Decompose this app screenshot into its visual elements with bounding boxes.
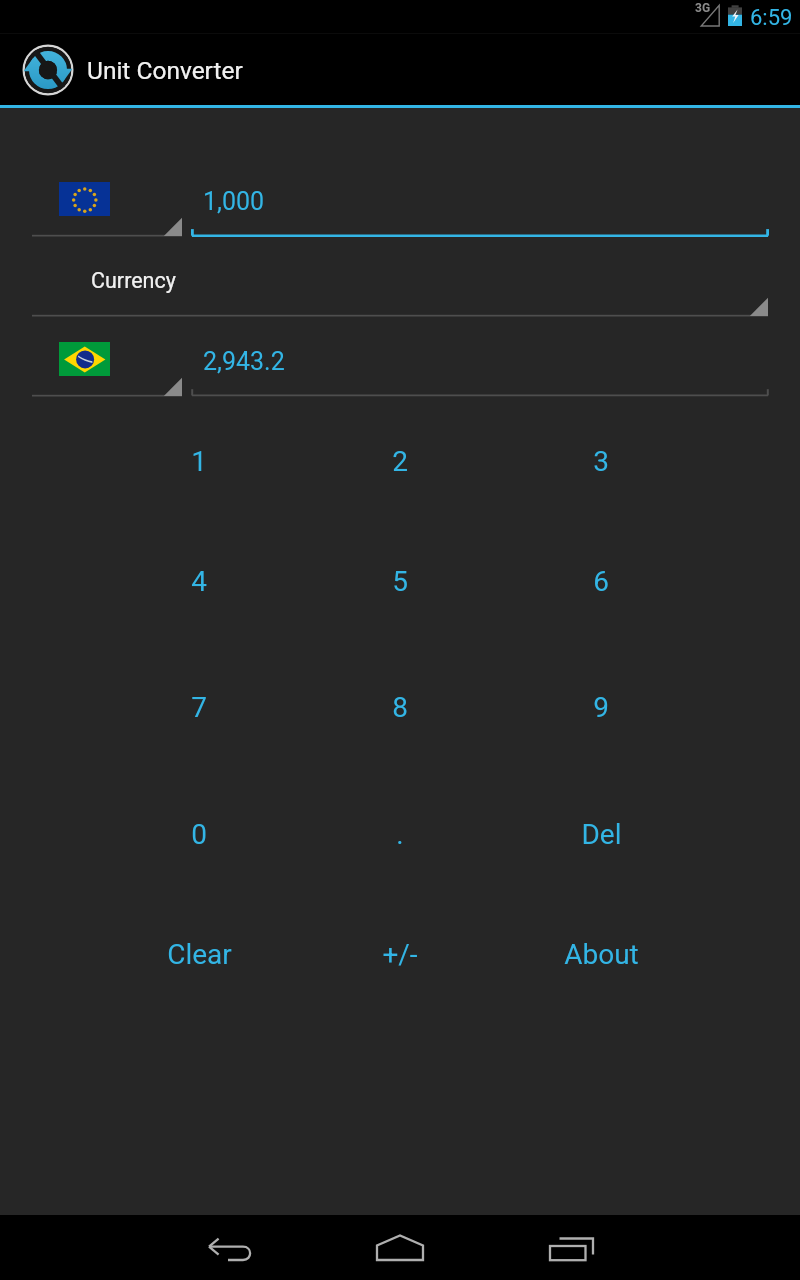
- staticText: Currency: [91, 268, 176, 293]
- button[interactable]: Target unit: [32, 320, 182, 396]
- staticText: +/-: [382, 938, 418, 971]
- button[interactable]: Del: [468, 775, 734, 894]
- staticText: 3: [593, 445, 609, 478]
- button[interactable]: 3: [468, 400, 734, 522]
- button[interactable]: 0: [66, 775, 332, 894]
- staticText: 9: [593, 691, 609, 724]
- staticText: 6: [593, 565, 609, 598]
- staticText: Unit Converter: [87, 56, 243, 85]
- staticText: 2,943.2: [203, 347, 285, 376]
- button[interactable]: Back: [170, 1215, 290, 1280]
- staticText: 2: [392, 445, 408, 478]
- staticText: 1,000: [203, 187, 265, 216]
- staticText: 6:59: [750, 5, 793, 31]
- staticText: 3G: [695, 1, 711, 15]
- staticText: 8: [392, 691, 408, 724]
- button[interactable]: App icon: [20, 42, 76, 98]
- button[interactable]: 6: [468, 519, 734, 644]
- button[interactable]: Recent apps: [516, 1215, 626, 1280]
- button[interactable]: 5: [267, 519, 533, 644]
- button[interactable]: 1,000: [191, 160, 769, 236]
- staticText: 7: [191, 691, 207, 724]
- button[interactable]: 7: [66, 644, 332, 771]
- staticText: Clear: [167, 938, 232, 971]
- button[interactable]: Source unit: [32, 160, 182, 236]
- staticText: 0: [191, 818, 207, 851]
- button[interactable]: 4: [66, 519, 332, 644]
- staticText: 4: [191, 565, 207, 598]
- button[interactable]: About: [468, 895, 734, 1014]
- button[interactable]: Home: [345, 1215, 455, 1280]
- staticText: 5: [392, 565, 408, 598]
- button[interactable]: +/-: [267, 895, 533, 1014]
- button[interactable]: 2: [267, 400, 533, 522]
- button[interactable]: 8: [267, 644, 533, 771]
- button[interactable]: Clear: [66, 895, 332, 1014]
- staticText: Del: [581, 818, 622, 851]
- staticText: .: [396, 818, 404, 851]
- staticText: About: [564, 938, 639, 971]
- button[interactable]: 2,943.2: [191, 320, 769, 396]
- button[interactable]: 1: [66, 400, 332, 522]
- button[interactable]: 9: [468, 644, 734, 771]
- staticText: 1: [191, 445, 207, 478]
- button[interactable]: Unit category: [32, 243, 768, 316]
